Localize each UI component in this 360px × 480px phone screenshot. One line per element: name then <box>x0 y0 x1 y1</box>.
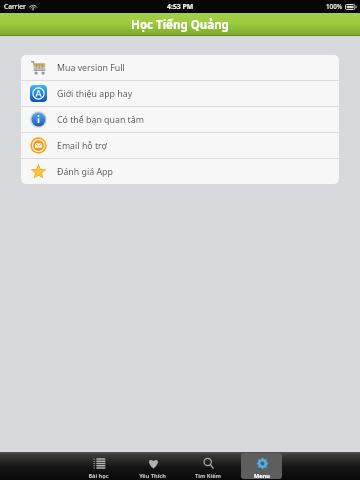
button[interactable]: Email hỗ trợ <box>21 133 339 158</box>
button[interactable]: Tìm Kiếm <box>187 453 228 479</box>
staticText: Carrier <box>4 2 26 11</box>
staticText: Bài học <box>88 472 109 479</box>
button[interactable]: Có thể bạn quan tâm <box>21 107 339 132</box>
button[interactable]: Giới thiệu app hay <box>21 81 339 106</box>
staticText: Email hỗ trợ <box>57 140 107 152</box>
staticText: Tìm Kiếm <box>195 472 221 479</box>
button[interactable]: Menu <box>241 453 282 479</box>
staticText: Đánh giá App <box>57 166 113 178</box>
staticText: 100% <box>326 2 343 11</box>
button[interactable]: Mua version Full <box>21 55 339 80</box>
staticText: Menu <box>254 472 270 479</box>
staticText: Mua version Full <box>57 62 125 74</box>
button[interactable]: Yêu Thích <box>132 453 173 479</box>
staticText: Giới thiệu app hay <box>57 88 133 100</box>
staticText: Yêu Thích <box>139 472 166 479</box>
staticText: 4:53 PM <box>167 2 194 11</box>
button[interactable]: Đánh giá App <box>21 159 339 184</box>
staticText: Học Tiếng Quảng <box>131 17 229 33</box>
button[interactable]: Bài học <box>78 453 119 479</box>
staticText: Có thể bạn quan tâm <box>57 114 144 126</box>
